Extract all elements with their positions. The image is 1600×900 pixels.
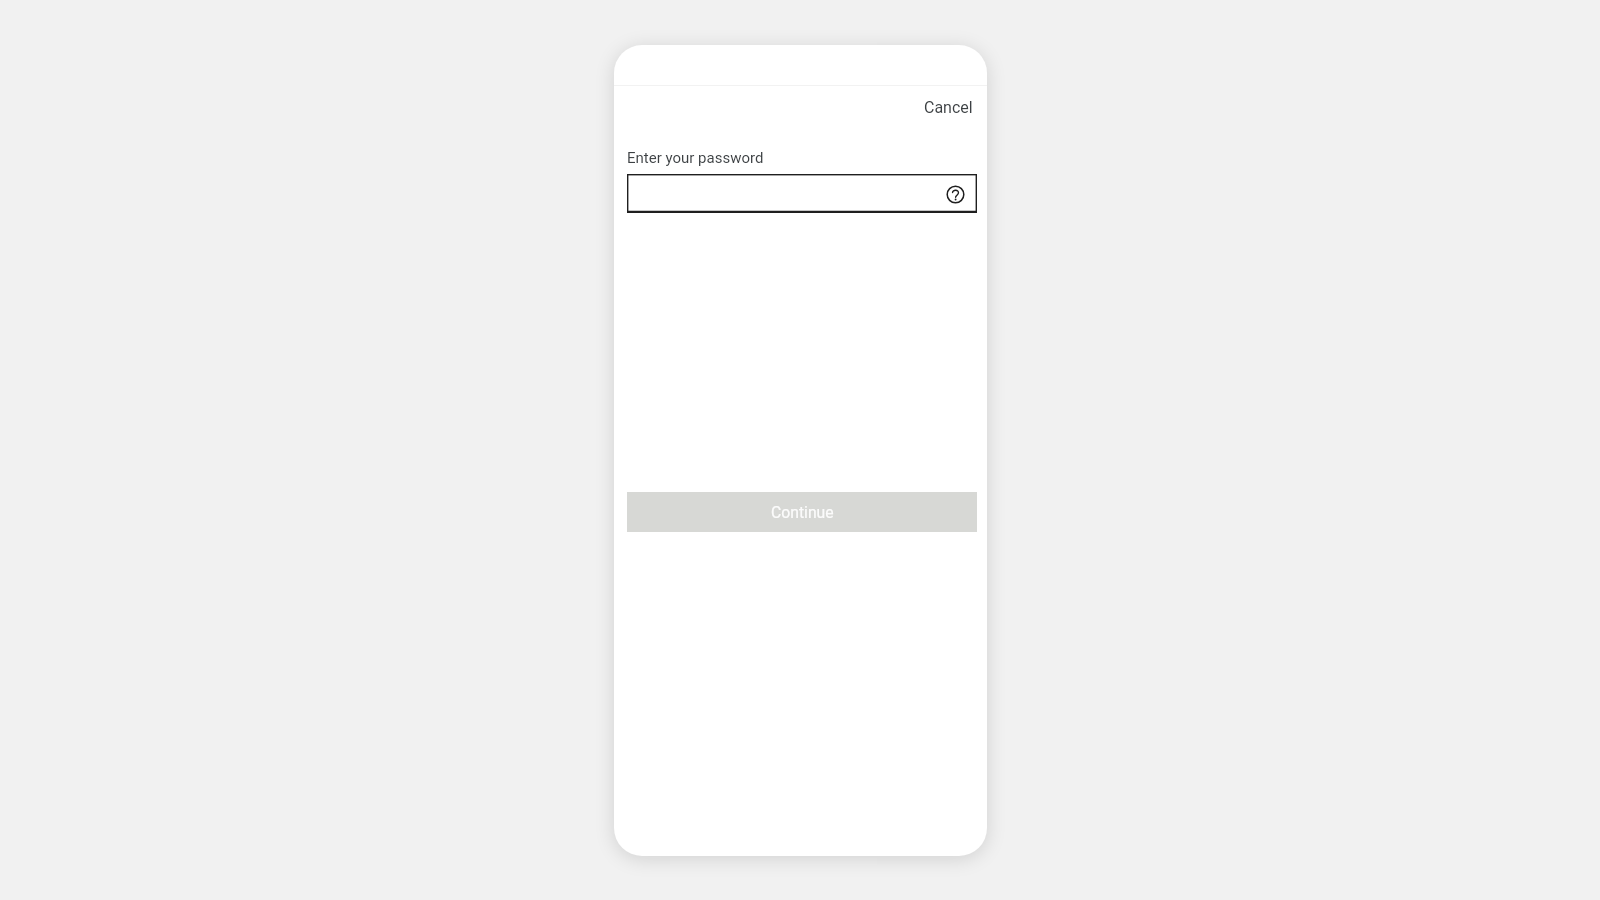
staticText: Enter your password [627, 149, 764, 167]
button[interactable]: Password field [627, 174, 977, 213]
button[interactable]: Continue [627, 492, 977, 532]
staticText: Cancel [924, 98, 973, 117]
button[interactable]: Help [944, 183, 966, 205]
button[interactable]: Cancel [911, 86, 987, 129]
staticText: Continue [771, 503, 834, 521]
